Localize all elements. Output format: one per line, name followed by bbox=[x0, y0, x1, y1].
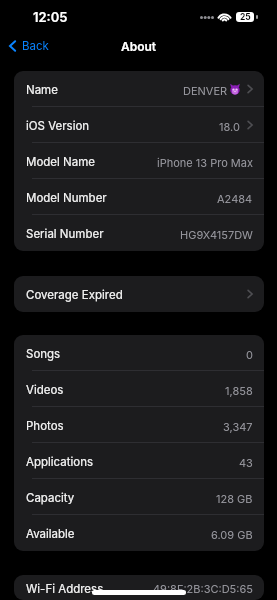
button[interactable]: Applications bbox=[14, 443, 264, 479]
staticText: Coverage Expired bbox=[26, 288, 123, 302]
button[interactable]: Songs bbox=[14, 335, 264, 371]
staticText: HG9X4157DW bbox=[180, 228, 253, 241]
staticText: DENVER bbox=[183, 84, 228, 97]
staticText: 49:8F:2B:3C:D5:65 bbox=[153, 582, 253, 595]
staticText: A2484 bbox=[217, 192, 253, 205]
button[interactable]: Back bbox=[0, 35, 57, 57]
staticText: Available bbox=[26, 527, 75, 541]
staticText: 0 bbox=[246, 348, 253, 361]
staticText: 12:05 bbox=[33, 9, 68, 25]
button[interactable]: Serial Number bbox=[14, 215, 264, 251]
staticText: Photos bbox=[26, 419, 64, 433]
staticText: Videos bbox=[26, 383, 64, 397]
staticText: Back bbox=[22, 39, 49, 53]
button[interactable]: Available bbox=[14, 515, 264, 551]
button[interactable]: Capacity bbox=[14, 479, 264, 515]
button[interactable]: Photos bbox=[14, 407, 264, 443]
button[interactable]: Coverage Expired bbox=[14, 276, 264, 312]
staticText: About bbox=[121, 39, 157, 54]
staticText: Capacity bbox=[26, 491, 75, 505]
staticText: Applications bbox=[26, 455, 94, 469]
button[interactable]: iOS Version bbox=[14, 107, 264, 143]
button[interactable]: Model Number bbox=[14, 179, 264, 215]
staticText: iOS Version bbox=[26, 119, 90, 133]
staticText: 6.09 GB bbox=[211, 528, 253, 541]
staticText: 1,858 bbox=[225, 384, 253, 397]
staticText: Model Name bbox=[26, 155, 95, 169]
staticText: 43 bbox=[239, 456, 253, 469]
staticText: Serial Number bbox=[26, 227, 104, 241]
staticText: Model Number bbox=[26, 191, 107, 205]
staticText: Songs bbox=[26, 347, 61, 361]
staticText: iPhone 13 Pro Max bbox=[157, 156, 253, 169]
staticText: 25 bbox=[240, 12, 251, 22]
button[interactable]: Name bbox=[14, 71, 264, 107]
staticText: Wi-Fi Address bbox=[26, 582, 104, 596]
staticText: Name bbox=[26, 83, 58, 97]
staticText: 3,347 bbox=[223, 420, 253, 433]
staticText: 18.0 bbox=[219, 120, 240, 133]
staticText: 128 GB bbox=[216, 492, 253, 505]
button[interactable]: Model Name bbox=[14, 143, 264, 179]
button[interactable]: Wi-Fi Address bbox=[14, 575, 264, 600]
button[interactable]: Videos bbox=[14, 371, 264, 407]
